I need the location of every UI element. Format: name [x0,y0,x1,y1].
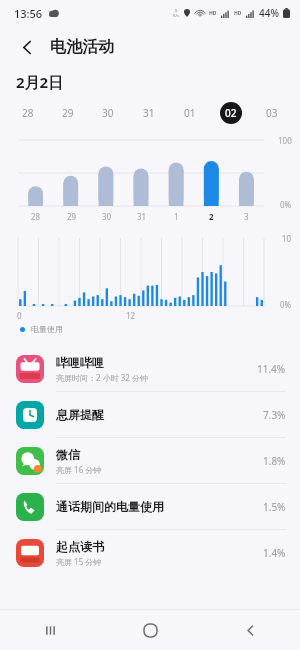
button[interactable]: 01 [169,98,210,128]
staticText: 0% [280,199,292,210]
staticText: 44% [259,6,279,20]
staticText: 亮屏 16 分钟 [56,464,102,475]
staticText: 13:56 [14,6,43,21]
button[interactable]: 30 [88,98,128,128]
staticText: 10 [282,233,292,244]
staticText: 1.5% [263,500,286,514]
staticText: 28 [22,106,34,120]
staticText: 2 [209,211,214,222]
staticText: 12 [126,310,136,321]
button[interactable]: Recents [0,610,100,650]
staticText: 1.8% [263,454,286,468]
button[interactable]: 02 [210,98,251,128]
staticText: 通话期间的电量使用 [56,499,164,514]
staticText: 30 [102,211,112,222]
staticText: 电量使用 [31,324,63,334]
staticText: 29 [67,211,77,222]
staticText: 31 [137,211,147,222]
staticText: 0% [280,299,292,310]
staticText: 1 [174,211,179,222]
staticText: 3 [244,211,249,222]
button[interactable]: 微信 [0,438,300,483]
staticText: 7.3% [263,408,286,422]
staticText: 电池活动 [50,37,114,57]
button[interactable]: 03 [251,98,292,128]
staticText: 亮屏 15 分钟 [56,556,102,567]
staticText: 亮屏时间：2 小时 32 分钟 [56,372,148,383]
staticText: 2月2日 [16,72,64,92]
staticText: K/s [173,13,179,18]
staticText: 1.4% [263,546,286,560]
button[interactable]: Back [10,30,44,64]
button[interactable]: 29 [48,98,88,128]
staticText: HD [209,10,217,17]
button[interactable]: 哔哩哔哩 [0,346,300,391]
button[interactable]: 通话期间的电量使用 [0,484,300,529]
button[interactable]: 28 [8,98,48,128]
staticText: 哔哩哔哩 [56,355,104,370]
staticText: 0 [17,310,22,321]
staticText: 29 [62,106,74,120]
staticText: HD [234,10,242,17]
staticText: 起点读书 [56,539,104,554]
staticText: 03 [266,106,278,120]
staticText: 0 [175,8,178,13]
button[interactable]: Back [200,610,300,650]
button[interactable]: Home [100,610,200,650]
staticText: 02 [225,106,237,120]
staticText: 30 [102,106,114,120]
staticText: 31 [143,106,155,120]
staticText: 100 [278,135,292,146]
button[interactable]: 息屏提醒 [0,392,300,437]
button[interactable]: 31 [128,98,169,128]
staticText: 01 [184,106,196,120]
staticText: 28 [31,211,41,222]
button[interactable]: 起点读书 [0,530,300,575]
staticText: 微信 [56,447,80,462]
staticText: 息屏提醒 [56,407,104,422]
staticText: 11.4% [257,362,286,376]
